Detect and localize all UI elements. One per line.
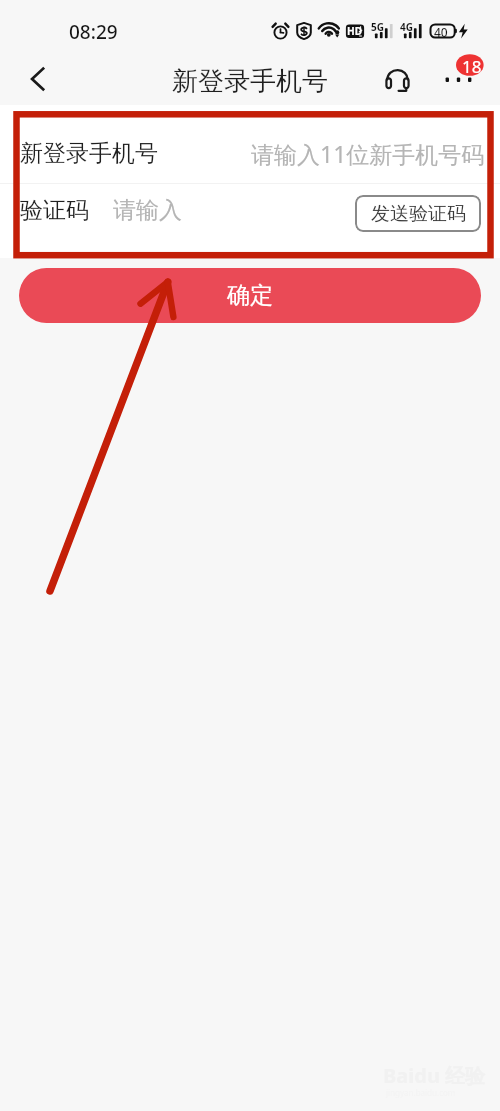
staticText: 确定	[227, 281, 273, 310]
button[interactable]: More options	[432, 52, 490, 105]
button[interactable]: 确定	[19, 268, 481, 323]
staticText: 请输入11位新手机号码	[251, 138, 485, 169]
staticText: 发送验证码	[371, 202, 466, 226]
staticText: 新登录手机号	[20, 139, 158, 168]
button[interactable]: Back	[11, 52, 65, 105]
button[interactable]: 验证码	[20, 196, 89, 225]
button[interactable]: 新登录手机号	[0, 115, 500, 192]
staticText: 40	[434, 24, 448, 40]
button[interactable]: 发送验证码	[355, 195, 481, 232]
staticText: 08:29	[69, 19, 118, 45]
staticText: 新登录手机号	[172, 65, 328, 98]
staticText: HD	[347, 24, 362, 38]
staticText: 请输入	[113, 196, 182, 225]
staticText: 5G	[371, 20, 384, 34]
button[interactable]: Customer service	[375, 57, 419, 101]
staticText: 18	[462, 55, 482, 78]
staticText: 4G	[400, 20, 413, 34]
